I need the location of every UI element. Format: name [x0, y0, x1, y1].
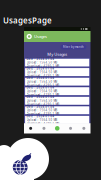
button[interactable]: Date : 2024-01-04 — [25, 116, 90, 124]
staticText: Date : 2024-01-04 — [27, 57, 55, 61]
button[interactable]: Date : 2024-01-04 — [25, 96, 90, 105]
staticText: Date : 2024-01-04 — [27, 67, 55, 70]
staticText: Download : 4290.1 MB — [27, 74, 60, 77]
button[interactable]: Tab 5 — [77, 123, 90, 133]
staticText: Usages — [34, 34, 47, 39]
staticText: Upload : 1564.50 MB — [27, 118, 58, 122]
staticText: Download : 4290.1 MB — [27, 103, 60, 106]
button[interactable]: Tab 1 — [24, 123, 37, 133]
staticText: Filter by month — [63, 45, 84, 49]
staticText: Download : 4290.1 MB — [27, 122, 60, 125]
staticText: Upload : 1564.50 MB — [27, 80, 58, 83]
button[interactable]: Date : 2024-01-04 — [25, 68, 90, 76]
staticText: Date : 2024-01-04 — [27, 105, 55, 108]
staticText: Upload : 1564.50 MB — [27, 70, 58, 74]
button[interactable]: Date : 2024-01-04 — [25, 87, 90, 95]
staticText: Upload : 1564.50 MB — [27, 61, 58, 64]
staticText: UsagesPage — [3, 15, 52, 26]
staticText: Download : 4290.1 MB — [27, 64, 60, 68]
button[interactable]: Filter by month — [60, 44, 86, 49]
button[interactable]: Date : 2024-01-04 — [25, 77, 90, 86]
button[interactable]: Tab 4 — [64, 123, 77, 133]
button[interactable]: Tab 3 — [51, 123, 64, 133]
staticText: Upload : 1564.50 MB — [27, 89, 58, 93]
staticText: Download : 4290.1 MB — [27, 112, 60, 116]
button[interactable]: Date : 2024-01-04 — [25, 58, 90, 67]
button[interactable]: Tab 2 — [37, 123, 51, 133]
staticText: My Usages — [47, 51, 67, 57]
staticText: Upload : 1564.50 MB — [27, 99, 58, 102]
staticText: Date : 2024-01-04 — [27, 114, 55, 118]
staticText: Download : 4290.1 MB — [27, 84, 60, 87]
staticText: Date : 2024-01-04 — [27, 86, 55, 89]
staticText: Date : 2024-01-04 — [27, 95, 55, 99]
staticText: Download : 4290.1 MB — [27, 93, 60, 97]
staticText: Upload : 1564.50 MB — [27, 108, 58, 112]
button[interactable]: Date : 2024-01-04 — [25, 106, 90, 115]
staticText: Date : 2024-01-04 — [27, 76, 55, 80]
